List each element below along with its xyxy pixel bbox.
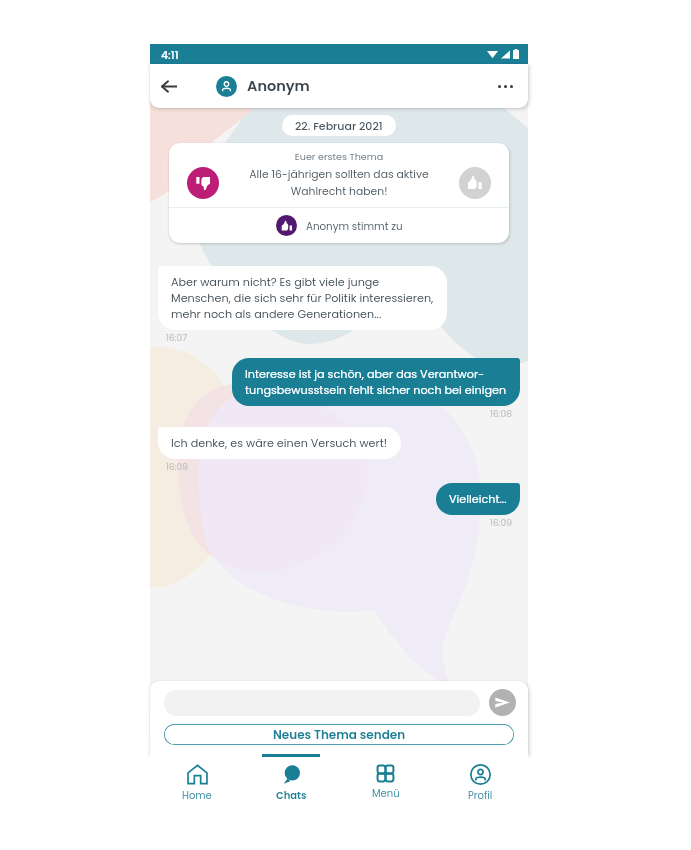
button[interactable]: Aber warum nicht? Es gibt viele junge Me… xyxy=(158,266,447,330)
staticText: Anonym xyxy=(247,76,310,96)
staticText: Menü xyxy=(372,786,400,800)
button[interactable]: Dislike xyxy=(187,167,219,199)
staticText: 16:09 xyxy=(490,517,512,530)
staticText: Aber warum nicht? Es gibt viele junge Me… xyxy=(171,274,434,322)
button[interactable]: Back xyxy=(150,64,187,108)
button[interactable]: Interesse ist ja schön, aber das Verantw… xyxy=(232,358,520,406)
staticText: 16:09 xyxy=(166,461,188,474)
staticText: Anonym stimmt zu xyxy=(306,219,403,233)
button[interactable]: Neues Thema senden xyxy=(164,724,514,745)
staticText: Profil xyxy=(468,788,493,802)
button[interactable]: 22. Februar 2021 xyxy=(282,115,396,136)
staticText: Home xyxy=(182,788,212,802)
staticText: Alle 16-jährigen sollten das aktive Wahl… xyxy=(224,167,454,199)
staticText: Neues Thema senden xyxy=(273,726,406,743)
button[interactable]: Like xyxy=(459,167,491,199)
staticText: 22. Februar 2021 xyxy=(295,118,383,133)
staticText: Euer erstes Thema xyxy=(169,150,509,163)
staticText: Chats xyxy=(276,788,307,802)
staticText: Interesse ist ja schön, aber das Verantw… xyxy=(245,366,507,398)
button[interactable]: Vielleicht... xyxy=(436,483,520,515)
staticText: 4:11 xyxy=(161,47,179,62)
button[interactable]: Euer erstes Thema xyxy=(169,143,509,243)
button[interactable]: Profil xyxy=(433,754,528,808)
button[interactable]: More options xyxy=(482,64,528,108)
button[interactable]: Menü xyxy=(338,754,433,808)
button[interactable]: Ich denke, es wäre einen Versuch wert! xyxy=(158,427,401,459)
button[interactable]: Home xyxy=(150,754,244,808)
staticText: 16:08 xyxy=(490,408,512,421)
staticText: Ich denke, es wäre einen Versuch wert! xyxy=(171,435,388,451)
staticText: Vielleicht... xyxy=(449,491,507,507)
staticText: 16:07 xyxy=(166,332,188,345)
button[interactable]: Send xyxy=(489,689,516,716)
button[interactable]: Chats xyxy=(244,754,338,808)
